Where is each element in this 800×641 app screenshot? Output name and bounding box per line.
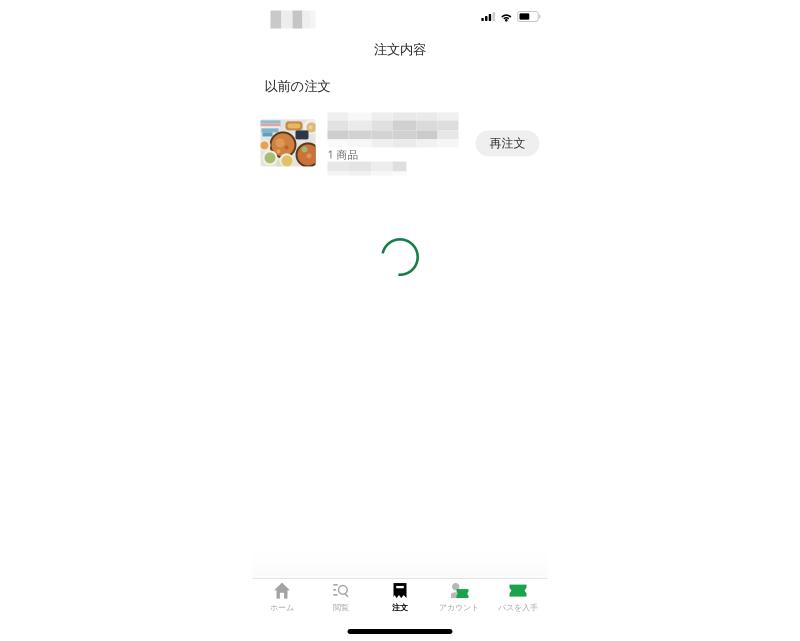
staticText: 閲覧 xyxy=(333,603,349,612)
staticText: ホーム xyxy=(270,603,294,612)
button[interactable]: アカウント xyxy=(429,579,488,616)
button[interactable]: ホーム xyxy=(252,579,311,616)
button[interactable]: 1 商品 xyxy=(252,119,547,183)
staticText: 以前の注文 xyxy=(264,78,330,94)
staticText: 再注文 xyxy=(489,136,525,151)
button[interactable]: 再注文 xyxy=(475,130,539,156)
staticText: パスを入手 xyxy=(498,603,538,612)
button[interactable]: パスを入手 xyxy=(488,579,547,616)
button[interactable]: 閲覧 xyxy=(311,579,370,616)
staticText: 注文 xyxy=(392,603,408,612)
button[interactable]: 注文 xyxy=(370,579,429,616)
staticText: 1 商品 xyxy=(327,147,358,162)
staticText: 注文内容 xyxy=(374,41,426,58)
staticText: アカウント xyxy=(439,603,479,612)
